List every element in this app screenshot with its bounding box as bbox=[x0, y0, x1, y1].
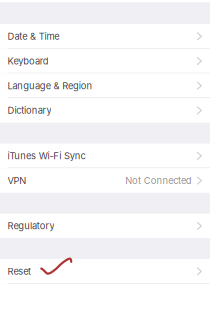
button[interactable]: Keyboard bbox=[0, 49, 210, 73]
staticText: Dictionary bbox=[7, 105, 51, 116]
button[interactable]: iTunes Wi-Fi Sync bbox=[0, 143, 210, 168]
staticText: Date & Time bbox=[7, 31, 59, 42]
button[interactable]: Dictionary bbox=[0, 98, 210, 123]
button[interactable]: Regulatory bbox=[0, 214, 210, 238]
button[interactable]: Date & Time bbox=[0, 24, 210, 49]
staticText: Keyboard bbox=[7, 55, 49, 67]
button[interactable]: VPN bbox=[0, 168, 210, 193]
staticText: VPN bbox=[7, 175, 26, 186]
button[interactable]: Language & Region bbox=[0, 73, 210, 98]
staticText: Not Connected bbox=[125, 175, 192, 186]
button[interactable]: Reset bbox=[0, 259, 210, 284]
staticText: Regulatory bbox=[7, 220, 54, 232]
staticText: Reset bbox=[7, 266, 31, 277]
staticText: iTunes Wi-Fi Sync bbox=[7, 150, 86, 161]
staticText: Language & Region bbox=[7, 80, 93, 91]
